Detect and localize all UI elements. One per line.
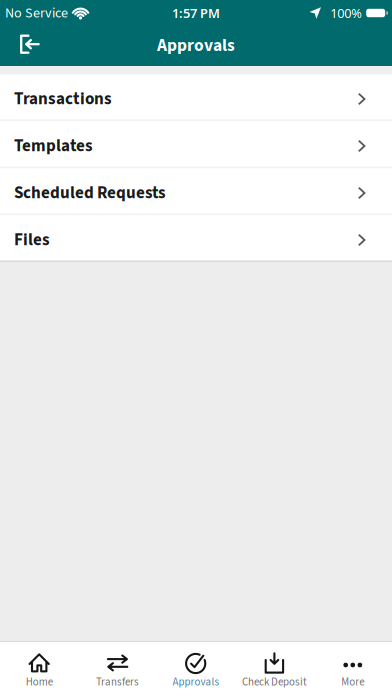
staticText: Approvals bbox=[157, 33, 235, 58]
staticText: Check Deposit bbox=[242, 674, 307, 690]
staticText: 1:57 PM bbox=[172, 4, 220, 22]
button[interactable]: More bbox=[314, 642, 392, 696]
button[interactable]: Sign out bbox=[0, 28, 54, 66]
button[interactable]: Check Deposit bbox=[235, 642, 314, 696]
staticText: Transactions bbox=[14, 87, 112, 111]
button[interactable]: Approvals bbox=[157, 642, 235, 696]
button[interactable]: Transactions bbox=[0, 74, 392, 119]
button[interactable]: Templates bbox=[0, 121, 392, 166]
staticText: More bbox=[341, 674, 364, 690]
staticText: Scheduled Requests bbox=[14, 181, 166, 205]
staticText: Transfers bbox=[96, 674, 139, 690]
staticText: Templates bbox=[14, 134, 93, 158]
staticText: Approvals bbox=[172, 674, 219, 690]
button[interactable]: Transfers bbox=[78, 642, 157, 696]
staticText: Home bbox=[26, 674, 53, 690]
staticText: No Service bbox=[5, 3, 68, 23]
staticText: 100% bbox=[330, 4, 362, 22]
button[interactable]: Scheduled Requests bbox=[0, 168, 392, 213]
staticText: Files bbox=[14, 228, 50, 252]
button[interactable]: Files bbox=[0, 215, 392, 260]
button[interactable]: Home bbox=[0, 642, 78, 696]
